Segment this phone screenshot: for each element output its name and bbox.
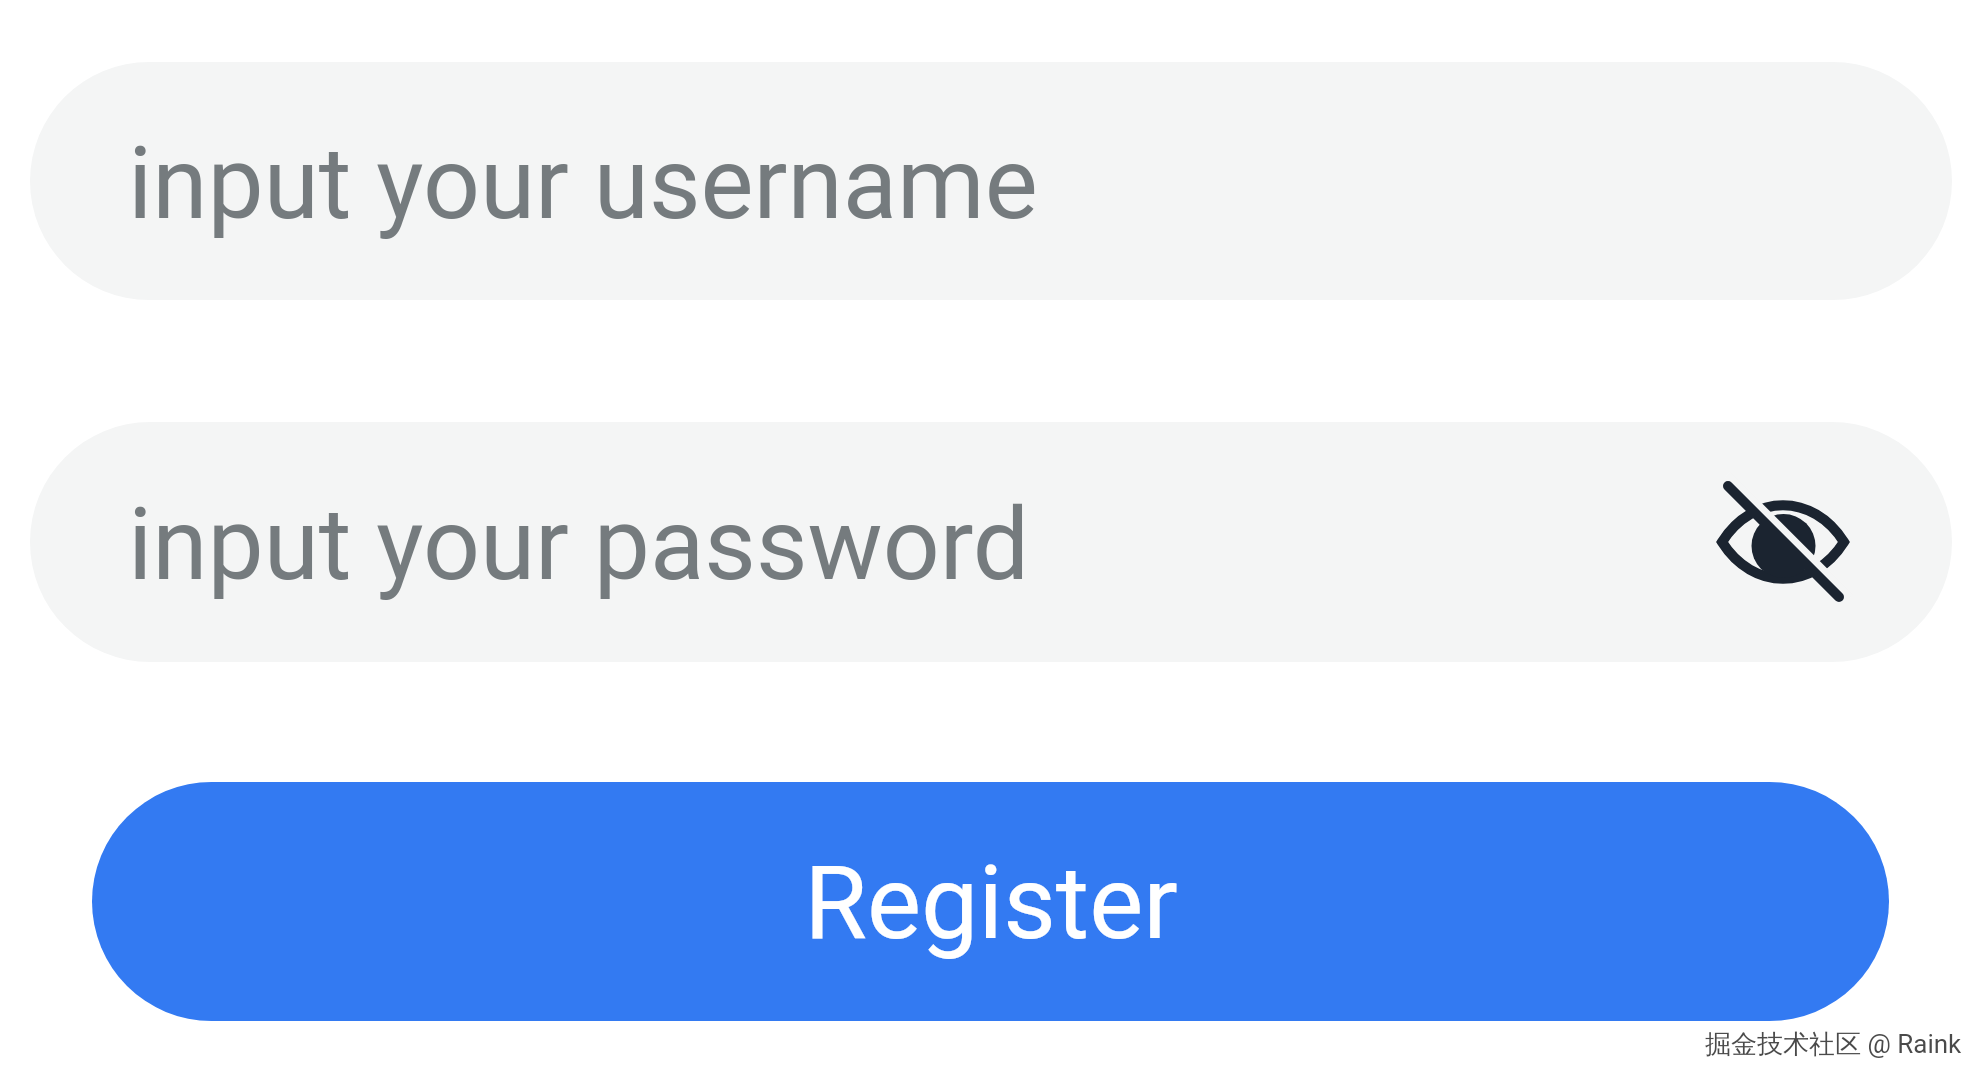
staticText: Register xyxy=(804,843,1178,963)
staticText: input your username xyxy=(128,125,1038,242)
button[interactable]: Show password xyxy=(1687,461,1880,621)
button[interactable]: input your username xyxy=(30,62,1952,300)
staticText: input your password xyxy=(128,486,1030,603)
staticText: 掘金技术社区 @ Raink xyxy=(1705,1028,1962,1061)
button[interactable]: input your password xyxy=(30,422,1952,662)
button[interactable]: Register xyxy=(92,782,1889,1021)
